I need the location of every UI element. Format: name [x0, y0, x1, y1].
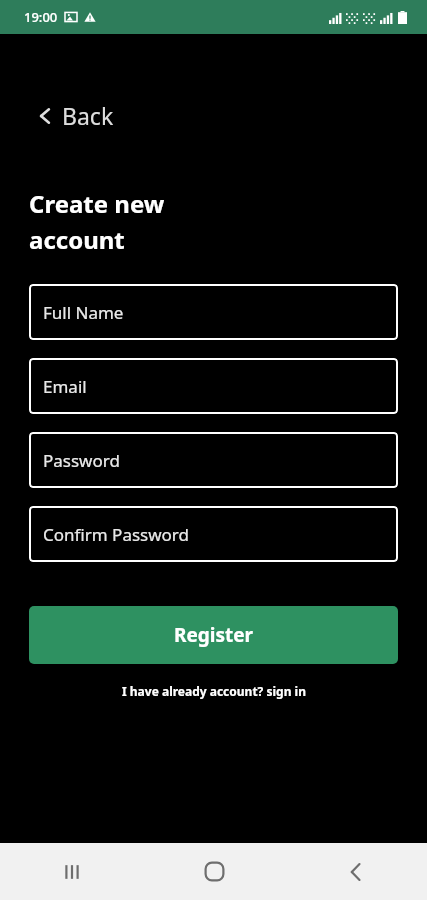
staticText: Full Name [43, 301, 124, 324]
button[interactable]: Confirm Password [29, 506, 398, 562]
staticText: account [29, 223, 125, 256]
staticText: I have already account? sign in [122, 683, 306, 699]
button[interactable]: Email [29, 358, 398, 414]
staticText: Create new [29, 187, 165, 220]
staticText: Confirm Password [43, 523, 189, 546]
button[interactable]: Full Name [29, 284, 398, 340]
staticText: Back [62, 100, 114, 131]
staticText: Register [174, 622, 254, 648]
staticText: 19:00 [24, 8, 58, 26]
button[interactable]: Back [285, 843, 427, 900]
button[interactable]: Password [29, 432, 398, 488]
button[interactable]: I have already account? sign in [114, 681, 314, 701]
button[interactable]: Register [29, 606, 398, 664]
button[interactable]: Recent apps [0, 843, 143, 900]
button[interactable]: Back [34, 96, 118, 135]
staticText: Email [43, 375, 87, 398]
staticText: Password [43, 449, 120, 472]
button[interactable]: Home [143, 843, 285, 900]
